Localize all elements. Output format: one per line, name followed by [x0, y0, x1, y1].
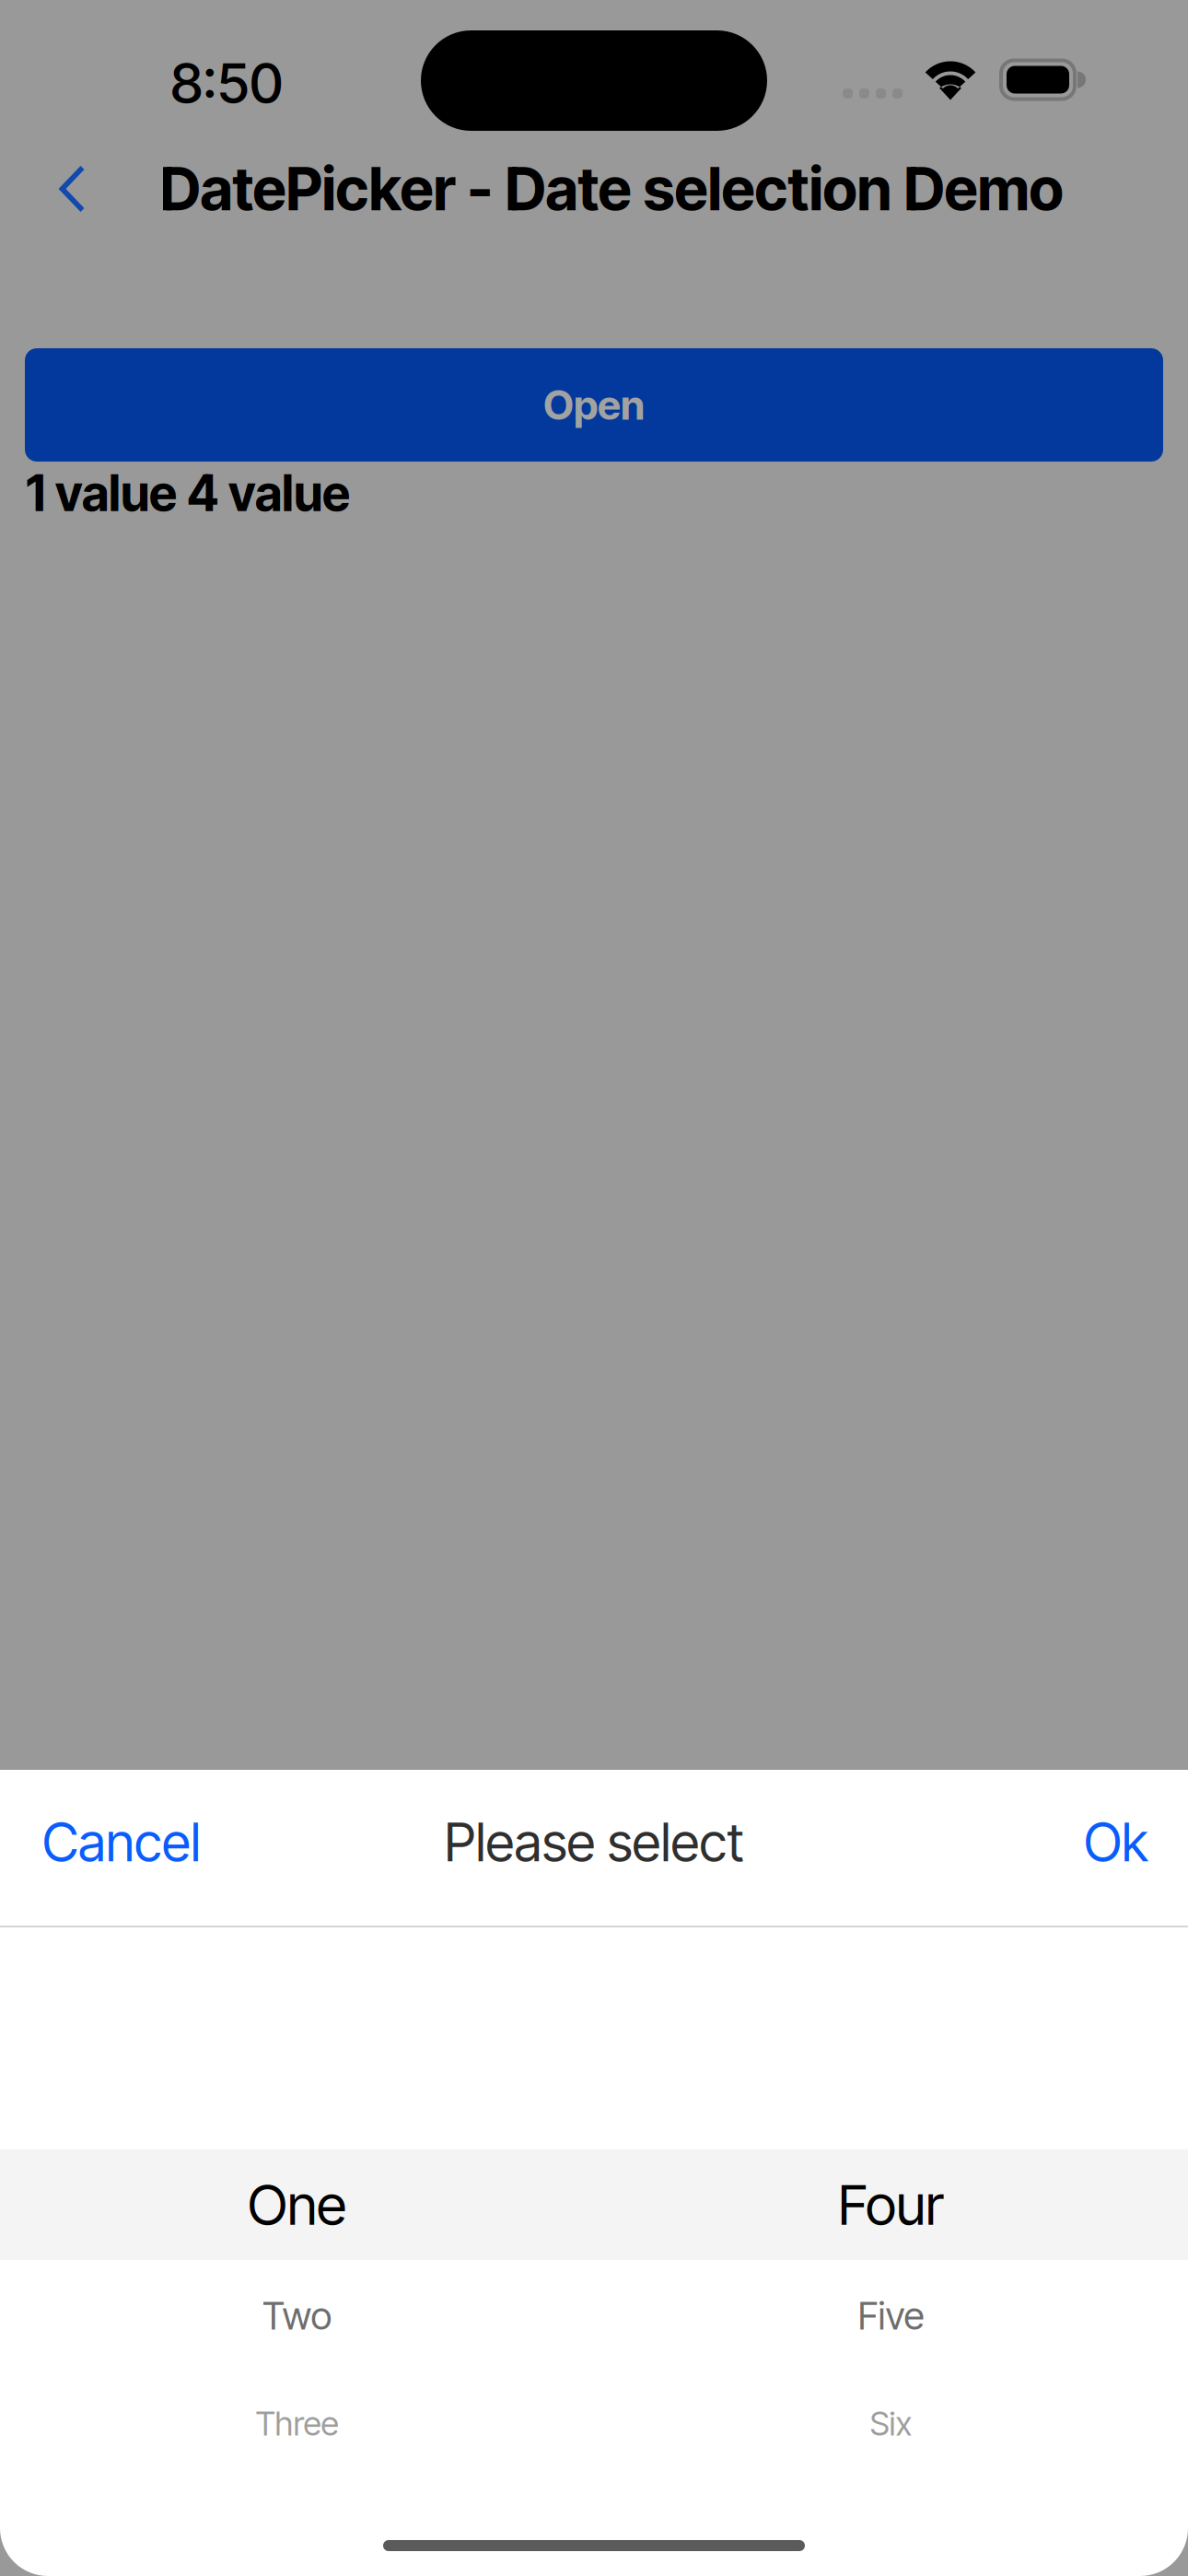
- staticText: Six: [870, 2403, 912, 2444]
- staticText: One: [248, 2171, 346, 2238]
- button[interactable]: Cancel: [28, 1788, 215, 1907]
- button[interactable]: One: [0, 2149, 594, 2260]
- button[interactable]: Four: [594, 2149, 1188, 2260]
- staticText: Five: [858, 2293, 924, 2339]
- button[interactable]: Three: [0, 2371, 594, 2476]
- staticText: DatePicker - Date selection Demo: [160, 153, 1063, 225]
- staticText: Three: [256, 2403, 338, 2444]
- button[interactable]: Two: [0, 2260, 594, 2371]
- staticText: Open: [543, 380, 645, 429]
- button[interactable]: Back: [34, 147, 110, 230]
- button[interactable]: Five: [594, 2260, 1188, 2371]
- staticText: 1 value 4 value: [26, 463, 350, 523]
- button[interactable]: Six: [594, 2371, 1188, 2476]
- staticText: Four: [838, 2171, 944, 2238]
- staticText: Please select: [444, 1810, 744, 1874]
- button[interactable]: Open: [25, 348, 1163, 462]
- staticText: 8:50: [170, 49, 283, 116]
- staticText: Ok: [1084, 1810, 1147, 1874]
- button[interactable]: Ok: [1069, 1788, 1162, 1907]
- staticText: Cancel: [42, 1810, 201, 1874]
- staticText: Two: [262, 2293, 332, 2339]
